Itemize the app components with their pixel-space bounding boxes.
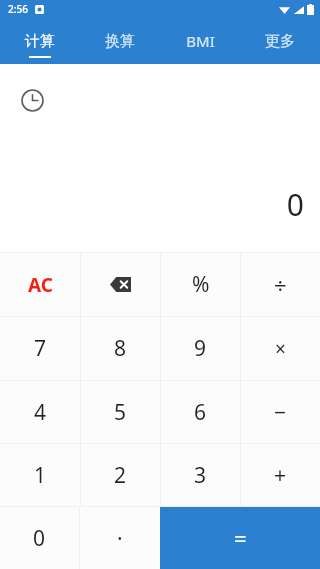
button[interactable]: 更多 [240,18,320,64]
staticText: + [274,461,287,490]
button[interactable]: ÷ [241,253,320,316]
staticText: 更多 [265,32,295,51]
staticText: 6 [194,398,207,427]
button[interactable]: BMI [160,18,240,64]
button[interactable]: 换算 [80,18,160,64]
staticText: 5 [114,398,127,427]
staticText: − [274,398,287,427]
staticText: 8 [114,334,127,363]
staticText: 2:56 [8,2,28,16]
button[interactable]: AC [0,253,80,316]
staticText: % [192,270,210,299]
button[interactable]: 3 [161,444,240,506]
button[interactable]: 计算 [0,18,80,64]
button[interactable]: 2 [81,444,160,506]
button[interactable]: 8 [81,317,160,380]
staticText: 7 [34,334,47,363]
staticText: AC [28,272,53,298]
button[interactable]: 7 [0,317,80,380]
button[interactable]: − [241,381,320,443]
staticText: 计算 [25,32,55,51]
staticText: BMI [186,31,215,51]
staticText: = [234,523,247,553]
button[interactable]: + [241,444,320,506]
button[interactable]: 4 [0,381,80,443]
staticText: × [275,336,286,362]
staticText: 换算 [105,32,135,51]
staticText: 9 [194,334,207,363]
staticText: 2 [114,461,127,490]
staticText: 0 [286,184,304,225]
staticText: ÷ [274,270,287,300]
button[interactable]: 1 [0,444,80,506]
staticText: 0 [33,524,46,553]
button[interactable]: 5 [81,381,160,443]
staticText: 1 [34,461,47,490]
button[interactable]: Backspace [81,253,160,316]
button[interactable]: 6 [161,381,240,443]
staticText: 4 [34,398,47,427]
staticText: · [117,524,123,553]
button[interactable]: % [161,253,240,316]
button[interactable]: · [80,507,160,569]
button[interactable]: 0 [0,507,79,569]
button[interactable]: 9 [161,317,240,380]
staticText: 3 [194,461,207,490]
button[interactable]: History [14,82,50,118]
button[interactable]: = [160,507,320,569]
button[interactable]: × [241,317,320,380]
